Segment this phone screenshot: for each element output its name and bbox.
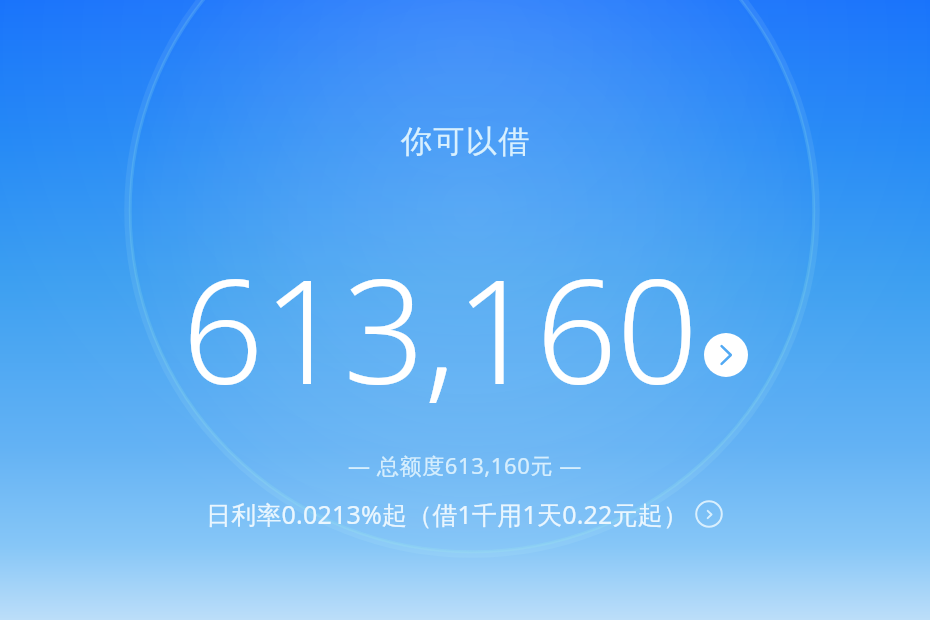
staticText: — 总额度613,160元 — [348,450,582,480]
staticText: 613,160 [182,231,698,426]
staticText: 你可以借 [400,122,530,161]
button[interactable]: 你可以借 [392,120,538,163]
staticText: 日利率0.0213%起（借1千用1天0.22元起） [206,497,689,531]
button[interactable]: — 总额度613,160元 — [340,448,590,482]
button[interactable]: 日利率0.0213%起（借1千用1天0.22元起） [200,495,731,533]
other: 利率说明 [693,498,725,530]
button[interactable]: 613,160 [178,231,752,426]
other: 查看额度详情 [704,333,748,377]
